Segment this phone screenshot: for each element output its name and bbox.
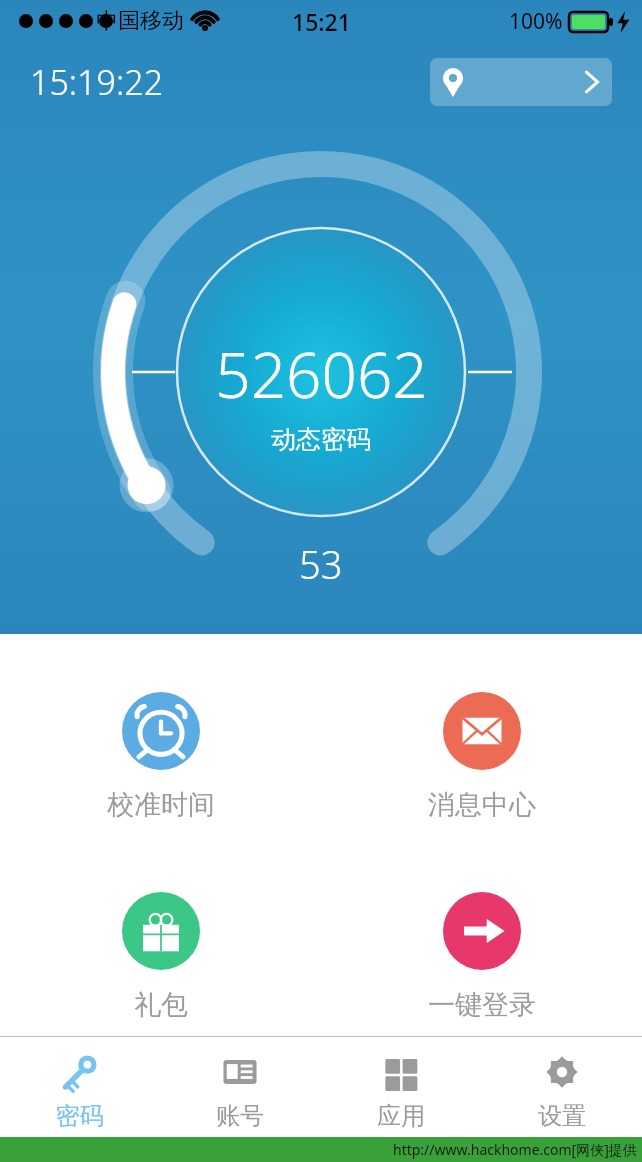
staticText: 设置 <box>538 1101 586 1131</box>
staticText: 应用 <box>377 1101 425 1131</box>
staticText: 礼包 <box>134 988 188 1022</box>
staticText: 校准时间 <box>107 788 215 822</box>
button[interactable]: 一键登录 <box>321 886 642 1028</box>
button[interactable]: 礼包 <box>0 886 321 1028</box>
staticText: 账号 <box>216 1101 264 1131</box>
staticText: 526062 <box>215 332 428 416</box>
button[interactable]: 密码 <box>0 1037 160 1137</box>
button[interactable]: 应用 <box>320 1037 481 1137</box>
staticText: 100% <box>509 7 563 36</box>
staticText: 15:21 <box>292 6 351 37</box>
button[interactable]: 校准时间 <box>0 686 321 828</box>
staticText: 15:19:22 <box>30 59 164 105</box>
staticText: 动态密码 <box>271 424 371 455</box>
staticText: 53 <box>299 538 343 590</box>
staticText: 一键登录 <box>428 988 536 1022</box>
button[interactable]: 设置 <box>481 1037 642 1137</box>
button[interactable]: 消息中心 <box>321 686 642 828</box>
staticText: 消息中心 <box>428 788 536 822</box>
staticText: http://www.hackhome.com[网侠]提供 <box>393 1140 637 1159</box>
button[interactable]: Location <box>430 58 612 106</box>
staticText: 密码 <box>56 1101 104 1131</box>
staticText: 中国移动 <box>96 7 184 35</box>
button[interactable]: 账号 <box>160 1037 320 1137</box>
